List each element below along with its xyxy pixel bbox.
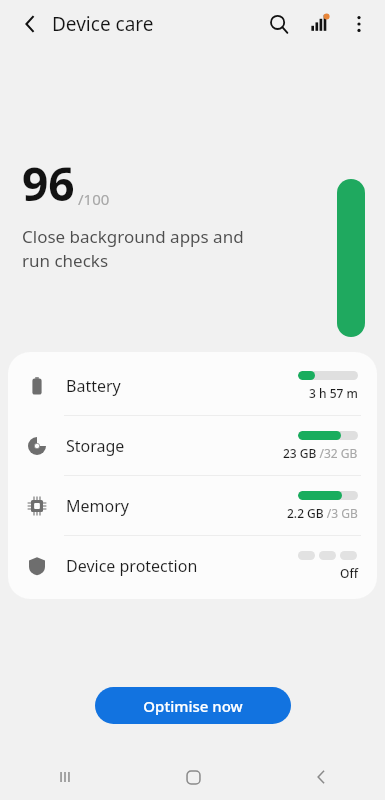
staticText: Memory xyxy=(66,495,129,517)
button[interactable]: Battery xyxy=(8,356,377,415)
button[interactable]: Recent apps xyxy=(0,754,129,800)
staticText: 3 h 57 m xyxy=(309,385,358,401)
staticText: /100 xyxy=(78,189,110,209)
staticText: Storage xyxy=(66,435,125,457)
button[interactable]: Usage report xyxy=(299,4,339,44)
button[interactable]: Storage xyxy=(8,416,377,475)
staticText: Optimise now xyxy=(143,696,243,716)
button[interactable]: Search xyxy=(259,4,299,44)
staticText: Device care xyxy=(52,11,154,37)
button[interactable]: Back xyxy=(12,6,48,42)
button[interactable]: Device protection xyxy=(8,536,377,595)
staticText: 2.2 GB /3 GB xyxy=(287,505,358,521)
button[interactable]: Optimise now xyxy=(95,687,291,724)
staticText: 96 xyxy=(22,152,75,215)
button[interactable]: Memory xyxy=(8,476,377,535)
staticText: Device protection xyxy=(66,555,198,577)
staticText: 23 GB /32 GB xyxy=(283,445,358,461)
staticText: Close background apps and run checks xyxy=(22,225,244,272)
staticText: Off xyxy=(340,565,358,581)
staticText: Battery xyxy=(66,375,121,397)
button[interactable]: More options xyxy=(339,4,379,44)
button[interactable]: Back xyxy=(257,754,385,800)
button[interactable]: Home xyxy=(129,754,257,800)
